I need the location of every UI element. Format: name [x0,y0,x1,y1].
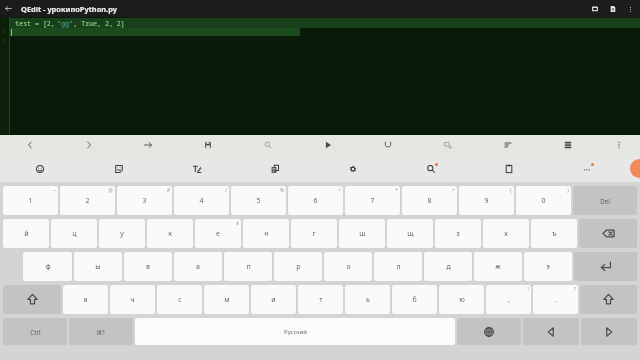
staticText: ы [95,262,101,272]
button[interactable]: л [374,252,422,281]
button[interactable]: Assistant [630,159,640,178]
button[interactable]: и [251,285,296,314]
button[interactable]: Search [392,155,470,182]
button[interactable]: Save file [604,0,622,17]
button[interactable]: з [435,219,481,248]
button[interactable]: ч [110,285,155,314]
button[interactable]: ы [74,252,122,281]
button[interactable]: в [124,252,172,281]
button[interactable]: Shift [580,285,637,314]
button[interactable]: ш [339,219,385,248]
button[interactable]: Run [298,135,358,155]
button[interactable]: 3 [117,186,172,215]
button[interactable]: 7 [345,186,400,215]
button[interactable]: 6 [288,186,343,215]
staticText: д [446,262,451,272]
button[interactable]: Emoji [0,155,79,182]
staticText: ф [45,262,51,272]
staticText: Русский [284,328,307,336]
button[interactable]: . [533,285,578,314]
staticText: а [196,262,200,272]
button[interactable]: м [204,285,249,314]
button[interactable]: щ [387,219,433,248]
button[interactable]: й [3,219,49,248]
button[interactable]: Enter [574,252,637,281]
button[interactable]: х [483,219,529,248]
button[interactable]: !#1 [69,318,133,345]
button[interactable]: я [63,285,108,314]
staticText: п [246,262,251,272]
button[interactable]: Stickers [79,155,158,182]
staticText: г [312,229,316,239]
button[interactable]: Ctrl [3,318,67,345]
button[interactable]: д [424,252,472,281]
button[interactable]: 0 [516,186,571,215]
button[interactable]: Clipboard [236,155,314,182]
button[interactable]: у [99,219,145,248]
button[interactable]: о [324,252,372,281]
button[interactable]: э [524,252,572,281]
button[interactable]: Next [59,135,118,155]
button[interactable]: Backspace [579,219,637,248]
staticText: й [24,229,29,239]
button[interactable]: More [548,155,626,182]
button[interactable]: ж [474,252,522,281]
button[interactable]: т [298,285,343,314]
button[interactable]: Back [0,0,17,17]
button[interactable]: Shift [3,285,61,314]
staticText: 2 [85,196,90,206]
button[interactable]: Русский [135,318,455,345]
button[interactable]: Settings [314,155,392,182]
button[interactable]: Tab [118,135,178,155]
button[interactable]: е [195,219,241,248]
button[interactable]: , [486,285,531,314]
button[interactable]: а [174,252,222,281]
button[interactable]: Undo [358,135,418,155]
staticText: ё [236,220,239,226]
button[interactable]: Find [238,135,298,155]
staticText: Ctrl [30,328,41,336]
button[interactable]: 5 [231,186,286,215]
button[interactable]: ю [439,285,484,314]
button[interactable]: 2 [60,186,115,215]
staticText: 3 [142,196,147,206]
staticText: б [412,295,417,305]
button[interactable]: Change language [457,318,521,345]
button[interactable]: Clipboard history [470,155,548,182]
button[interactable]: г [291,219,337,248]
button[interactable]: ь [345,285,390,314]
button[interactable]: Move cursor right [581,318,637,345]
staticText: 1 [28,196,33,206]
button[interactable]: 8 [402,186,457,215]
button[interactable]: Move cursor left [523,318,579,345]
button[interactable]: Save [178,135,238,155]
button[interactable]: Previous [0,135,59,155]
button[interactable]: ц [51,219,97,248]
staticText: , [508,295,510,305]
staticText: 3 [3,38,6,48]
button[interactable]: ф [23,252,72,281]
button[interactable]: More [598,135,640,155]
button[interactable]: 4 [174,186,229,215]
button[interactable]: More options [622,1,638,17]
button[interactable]: к [147,219,193,248]
button[interactable]: п [224,252,272,281]
button[interactable]: б [392,285,437,314]
button[interactable]: с [157,285,202,314]
button[interactable]: Format [478,135,538,155]
staticText: 4 [199,196,204,206]
button[interactable]: Lines [538,135,598,155]
button[interactable]: н [243,219,289,248]
button[interactable]: Del [573,186,637,215]
button[interactable]: Select block [418,135,478,155]
staticText: 1 [3,18,6,28]
staticText: ! [527,286,529,292]
button[interactable]: ъ [531,219,577,248]
button[interactable]: 9 [459,186,514,215]
staticText: QEdit - урокипоPython.py [21,4,117,14]
button[interactable]: р [274,252,322,281]
button[interactable]: 1 [3,186,58,215]
button[interactable]: Handwriting [158,155,236,182]
button[interactable]: Open folder [586,0,604,17]
staticText: ) [567,187,569,193]
